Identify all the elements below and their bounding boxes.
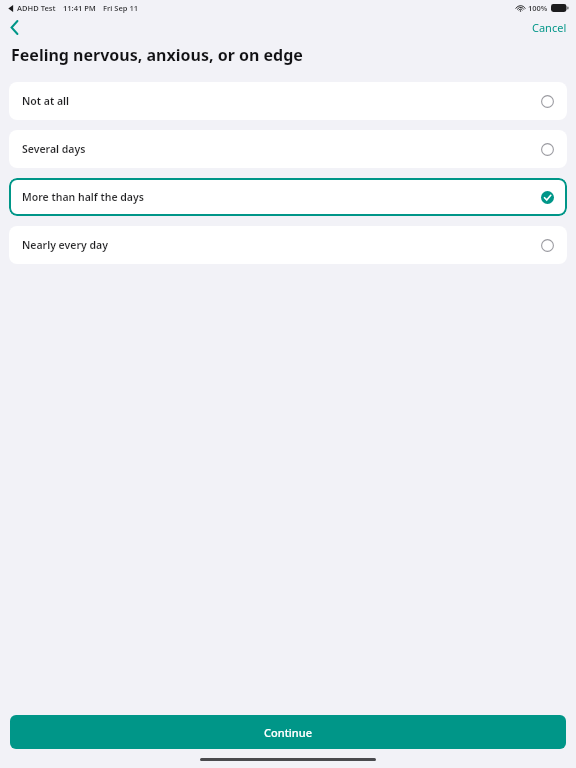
- staticText: 100%: [528, 3, 548, 13]
- button[interactable]: Not at all: [9, 82, 567, 120]
- button[interactable]: Continue: [10, 715, 566, 749]
- staticText: More than half the days: [22, 190, 144, 204]
- button[interactable]: Nearly every day: [9, 226, 567, 264]
- staticText: Not at all: [22, 94, 70, 108]
- staticText: Cancel: [532, 20, 567, 35]
- staticText: Several days: [22, 142, 86, 156]
- staticText: Feeling nervous, anxious, or on edge: [11, 44, 303, 66]
- button[interactable]: Back: [2, 16, 26, 38]
- button[interactable]: Several days: [9, 130, 567, 168]
- button[interactable]: More than half the days: [9, 178, 567, 216]
- staticText: 11:41 PM: [63, 3, 96, 13]
- staticText: Nearly every day: [22, 238, 108, 252]
- staticText: Fri Sep 11: [103, 3, 139, 13]
- staticText: Continue: [264, 725, 312, 740]
- button[interactable]: Cancel: [523, 18, 576, 37]
- staticText: ADHD Test: [17, 3, 56, 13]
